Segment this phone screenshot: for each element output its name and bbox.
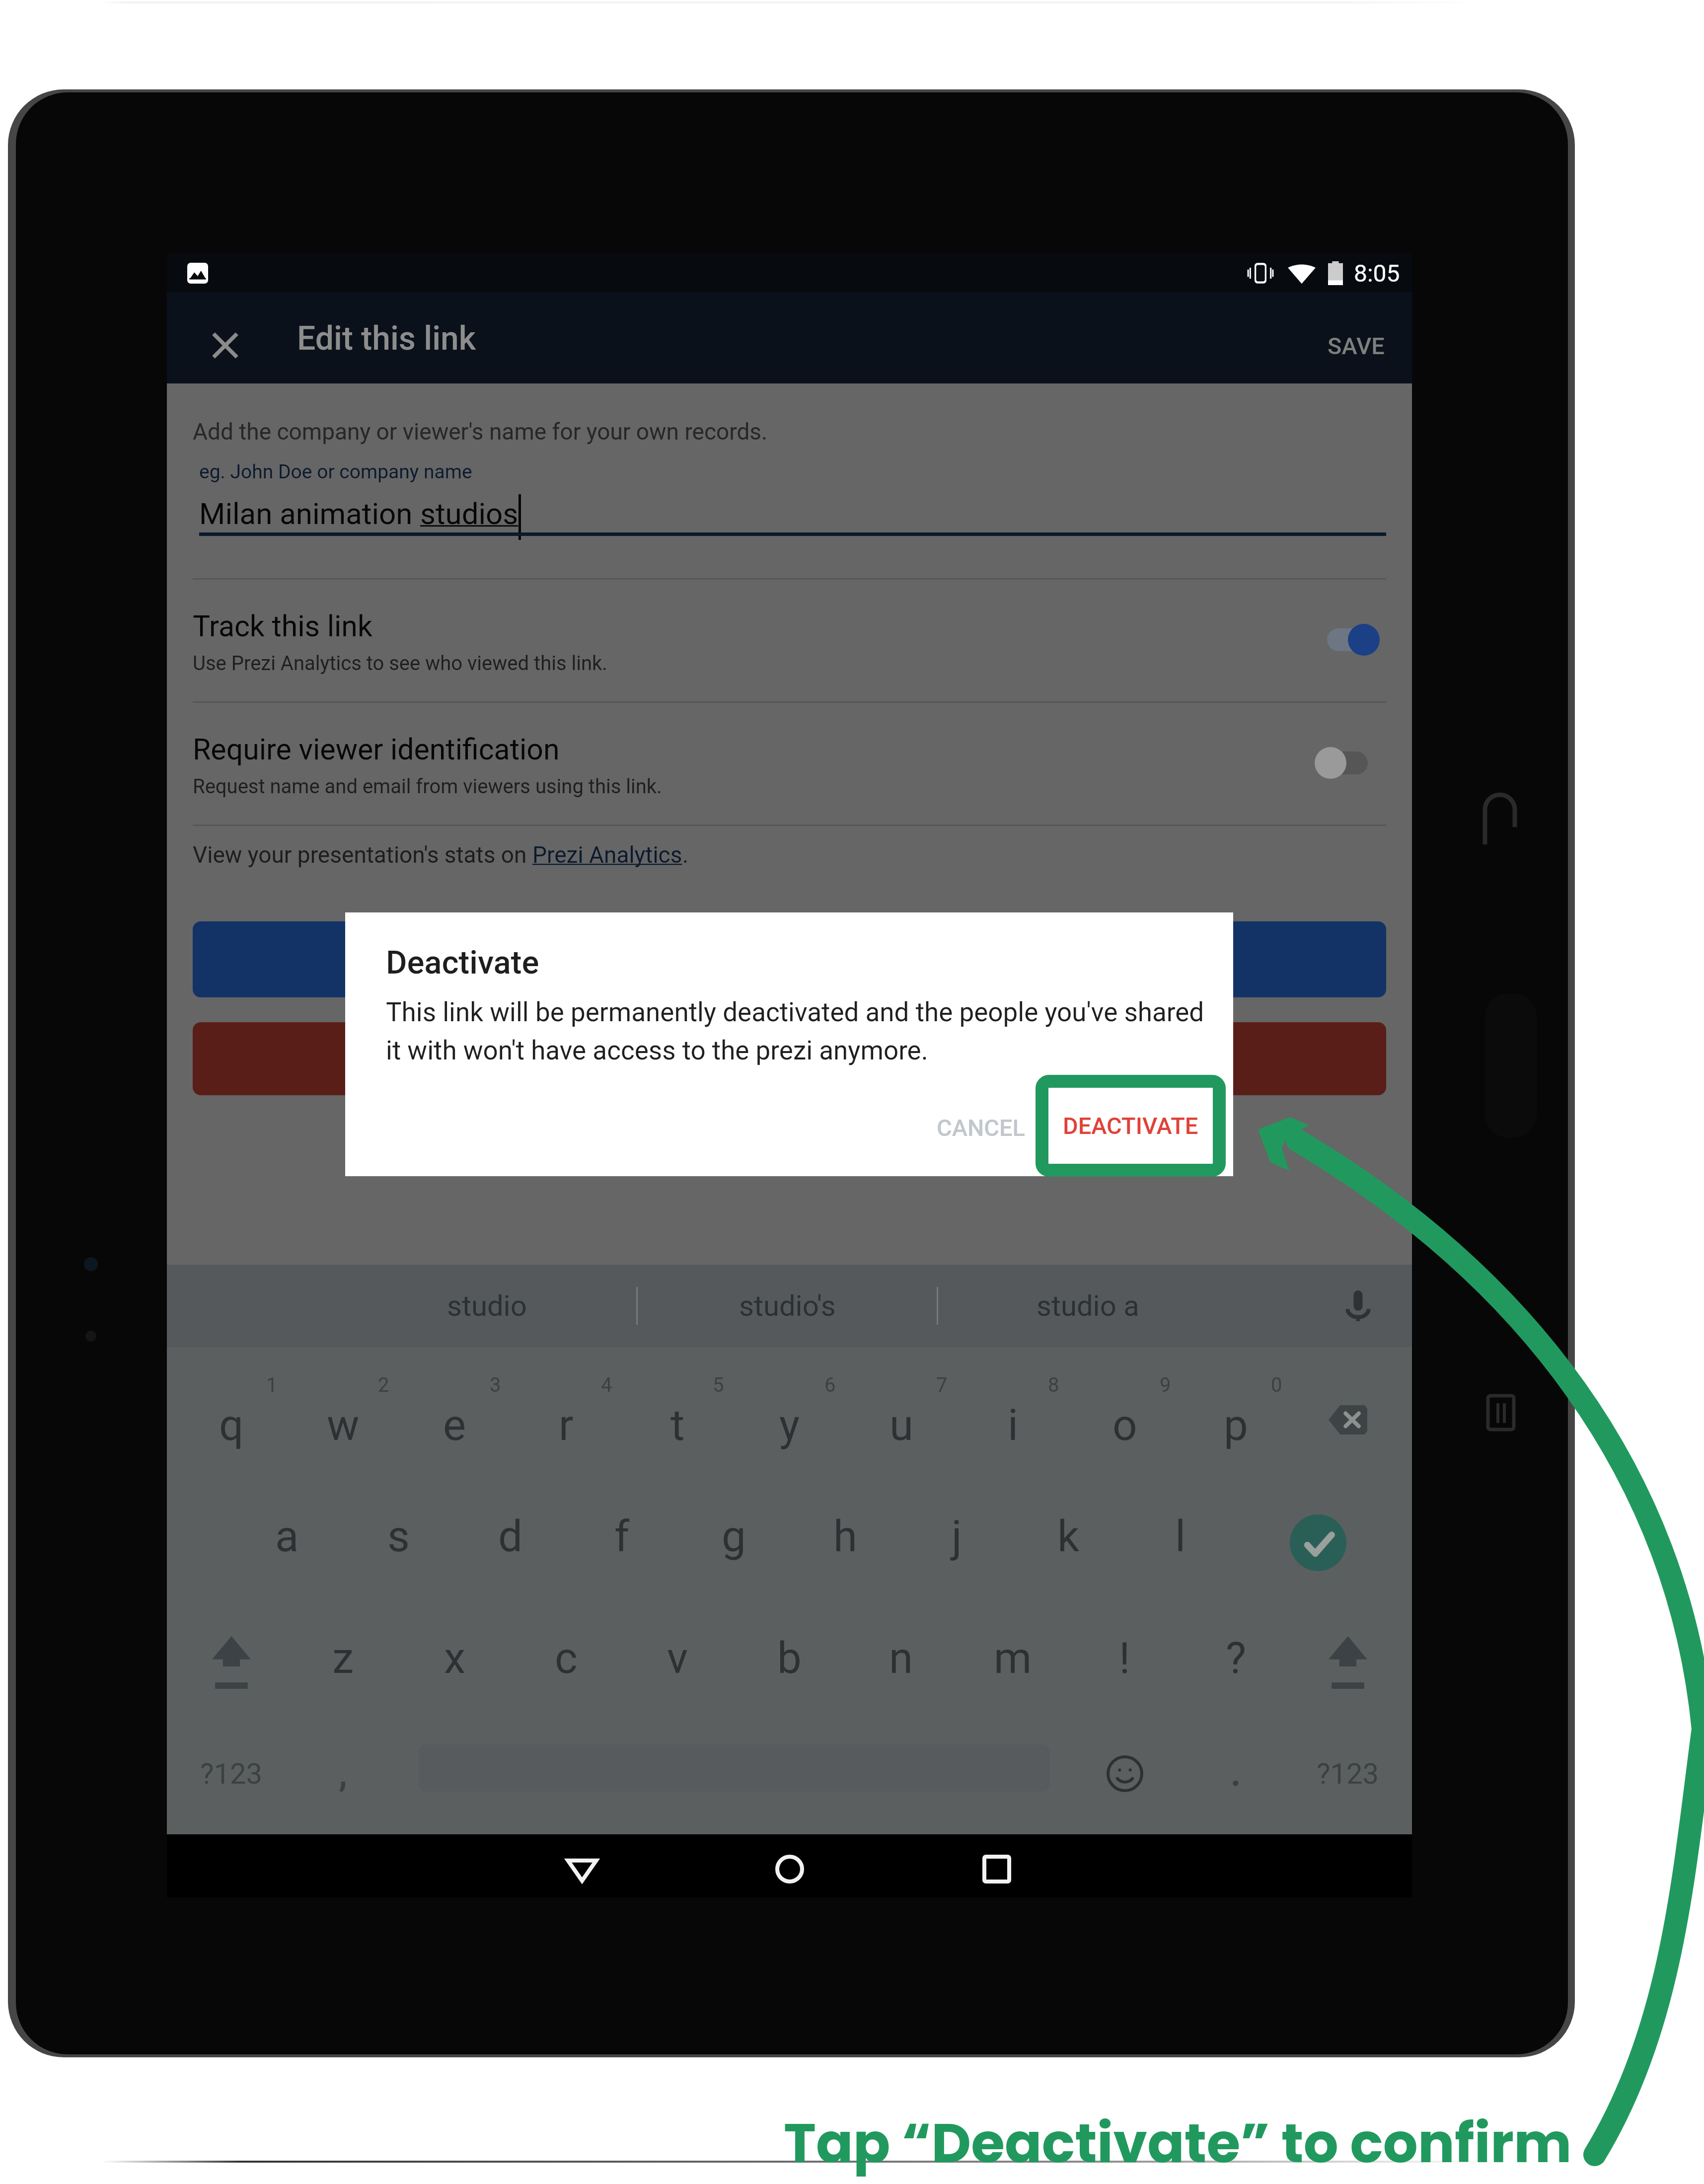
- button[interactable]: studio: [337, 1265, 636, 1347]
- staticText: j: [952, 1511, 962, 1562]
- button[interactable]: 1: [175, 1347, 287, 1469]
- button[interactable]: [193, 921, 1386, 997]
- staticText: c: [555, 1633, 578, 1683]
- button[interactable]: 8: [957, 1347, 1069, 1469]
- button[interactable]: ?: [1180, 1590, 1292, 1713]
- staticText: CANCEL: [937, 1114, 1026, 1141]
- staticText: 1: [266, 1373, 278, 1397]
- button[interactable]: 4: [510, 1347, 622, 1469]
- staticText: i: [1008, 1400, 1019, 1450]
- staticText: Deactivate: [386, 944, 539, 981]
- button[interactable]: studio's: [638, 1265, 937, 1347]
- staticText: This link will be permanently deactivate…: [386, 997, 1204, 1028]
- staticText: studios: [420, 496, 519, 531]
- button[interactable]: l: [1124, 1469, 1236, 1590]
- button[interactable]: Require viewer identification: [167, 701, 1412, 825]
- staticText: k: [1057, 1511, 1080, 1562]
- staticText: a: [275, 1511, 299, 1562]
- staticText: o: [1112, 1400, 1137, 1450]
- button[interactable]: c: [510, 1590, 622, 1713]
- button[interactable]: a: [231, 1469, 343, 1590]
- staticText: Prezi Analytics: [532, 841, 682, 868]
- button[interactable]: Back: [537, 1841, 627, 1897]
- button[interactable]: k: [1013, 1469, 1124, 1590]
- staticText: .: [682, 841, 689, 868]
- staticText: studio a: [1037, 1289, 1139, 1323]
- staticText: ?123: [1317, 1757, 1379, 1791]
- staticText: l: [1175, 1511, 1186, 1562]
- staticText: ,: [339, 1753, 348, 1794]
- button[interactable]: n: [845, 1590, 957, 1713]
- button[interactable]: f: [566, 1469, 678, 1590]
- button[interactable]: Voice input: [1237, 1265, 1412, 1347]
- button[interactable]: Track this link: [167, 578, 1412, 701]
- staticText: 9: [1160, 1373, 1171, 1397]
- button[interactable]: !: [1069, 1590, 1181, 1713]
- staticText: e: [443, 1400, 466, 1450]
- staticText: 8: [1048, 1373, 1059, 1397]
- staticText: u: [889, 1400, 913, 1450]
- staticText: !: [1119, 1633, 1130, 1683]
- button[interactable]: 0: [1180, 1347, 1292, 1469]
- button[interactable]: z: [287, 1590, 399, 1713]
- staticText: eg. John Doe or company name: [199, 460, 472, 483]
- button[interactable]: Close: [193, 307, 257, 383]
- button[interactable]: shift: [1292, 1590, 1404, 1713]
- button[interactable]: j: [901, 1469, 1013, 1590]
- button[interactable]: v: [622, 1590, 734, 1713]
- staticText: Use Prezi Analytics to see who viewed th…: [193, 652, 607, 675]
- button[interactable]: enter: [1262, 1469, 1374, 1590]
- staticText: SAVE: [1328, 332, 1385, 360]
- button[interactable]: DEACTIVATE: [1036, 1075, 1226, 1177]
- staticText: 5: [713, 1373, 724, 1397]
- button[interactable]: d: [454, 1469, 566, 1590]
- staticText: r: [559, 1400, 574, 1450]
- button[interactable]: Home: [745, 1841, 834, 1897]
- staticText: studio's: [739, 1289, 836, 1323]
- button[interactable]: back: [1292, 1347, 1404, 1469]
- button[interactable]: studio a: [938, 1265, 1237, 1347]
- button[interactable]: g: [678, 1469, 790, 1590]
- staticText: 3: [490, 1373, 501, 1397]
- button[interactable]: shift: [175, 1590, 287, 1713]
- staticText: b: [777, 1633, 802, 1683]
- button[interactable]: CANCEL: [918, 1098, 1043, 1157]
- staticText: v: [667, 1633, 688, 1683]
- staticText: studio: [447, 1289, 527, 1323]
- button[interactable]: 7: [845, 1347, 957, 1469]
- staticText: Milan animation: [199, 496, 420, 531]
- button[interactable]: 2: [287, 1347, 399, 1469]
- button[interactable]: b: [734, 1590, 845, 1713]
- button[interactable]: Prezi Analytics: [532, 841, 682, 868]
- staticText: Add the company or viewer's name for you…: [193, 418, 768, 445]
- button[interactable]: 6: [734, 1347, 845, 1469]
- button[interactable]: x: [399, 1590, 511, 1713]
- staticText: f: [614, 1511, 630, 1562]
- button[interactable]: 9: [1069, 1347, 1181, 1469]
- staticText: .: [1231, 1753, 1241, 1794]
- button[interactable]: Recents: [952, 1841, 1041, 1897]
- staticText: Edit this link: [297, 319, 476, 358]
- button[interactable]: ?123: [1292, 1713, 1404, 1834]
- staticText: q: [219, 1400, 244, 1450]
- staticText: View your presentation's stats on: [193, 841, 532, 868]
- staticText: 4: [601, 1373, 612, 1397]
- button[interactable]: m: [957, 1590, 1069, 1713]
- staticText: g: [722, 1511, 746, 1562]
- button[interactable]: SAVE: [1300, 312, 1412, 379]
- button[interactable]: s: [343, 1469, 454, 1590]
- staticText: Require viewer identification: [193, 732, 560, 766]
- button[interactable]: [193, 1022, 1386, 1095]
- button[interactable]: ?123: [175, 1713, 287, 1834]
- staticText: 0: [1271, 1373, 1282, 1397]
- button[interactable]: h: [789, 1469, 901, 1590]
- button[interactable]: 5: [622, 1347, 734, 1469]
- staticText: y: [779, 1400, 800, 1450]
- button[interactable]: 3: [399, 1347, 511, 1469]
- staticText: Tap “Deactivate” to confirm: [784, 2105, 1572, 2182]
- button[interactable]: Emoji: [1069, 1713, 1181, 1834]
- staticText: w: [327, 1400, 360, 1450]
